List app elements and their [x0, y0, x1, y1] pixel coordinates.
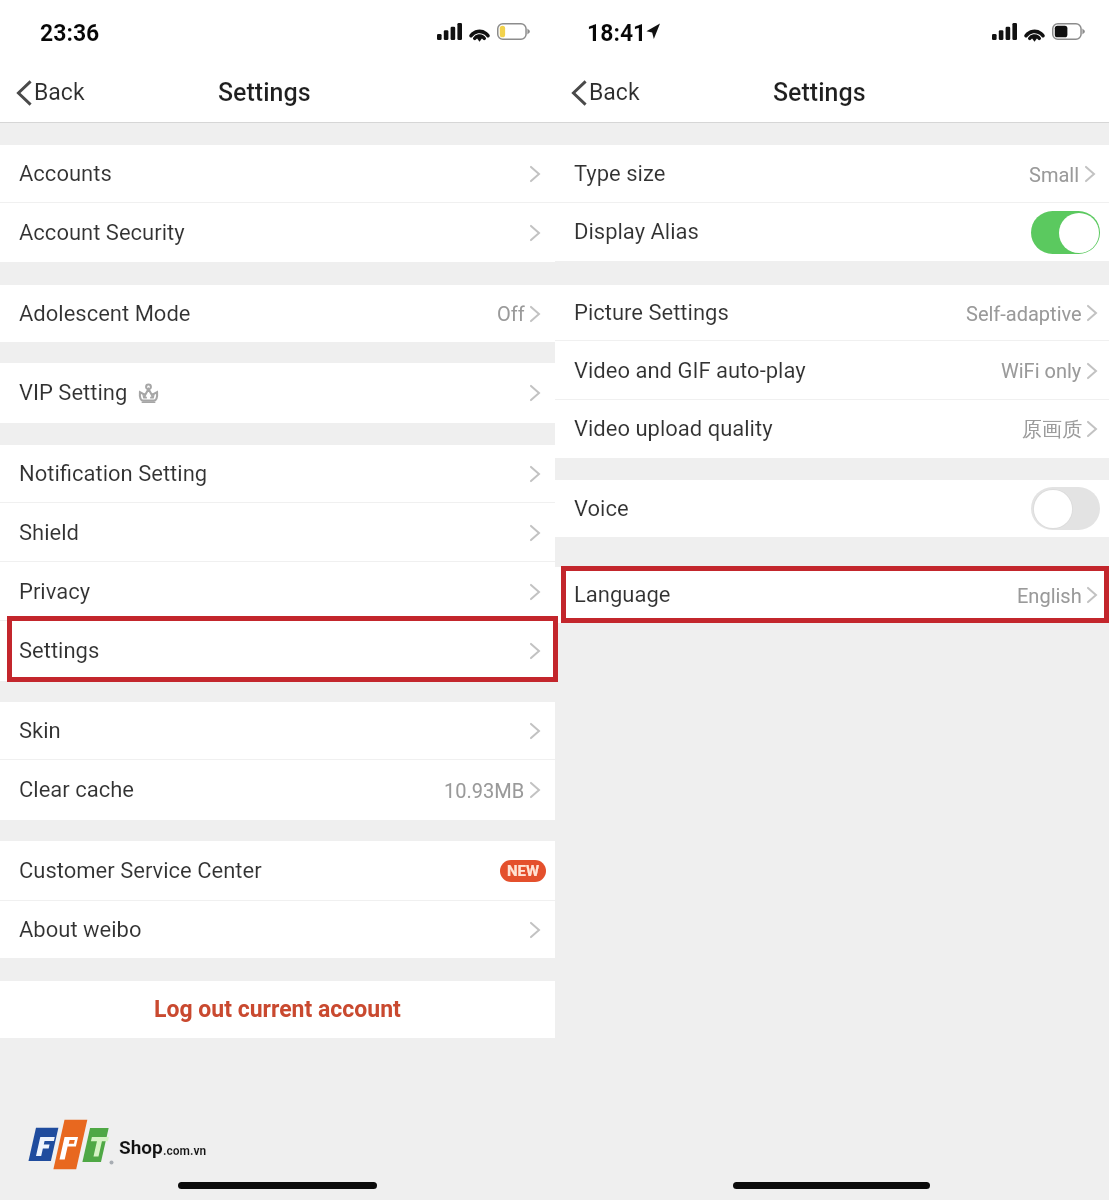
staticText: Log out current account: [154, 996, 401, 1023]
button[interactable]: Privacy: [0, 562, 555, 621]
button[interactable]: Switch on: [1031, 211, 1100, 254]
button[interactable]: Display Alias: [555, 203, 1109, 261]
staticText: Language: [574, 582, 671, 608]
button[interactable]: Video and GIF auto-play: [555, 341, 1109, 400]
button[interactable]: Video upload quality: [555, 400, 1109, 458]
button[interactable]: Type size: [555, 145, 1109, 203]
button[interactable]: Log out current account: [0, 981, 555, 1038]
button[interactable]: VIP Setting: [0, 363, 555, 423]
staticText: Voice: [574, 496, 629, 522]
staticText: Back: [589, 79, 640, 106]
staticText: Video and GIF auto-play: [574, 358, 806, 384]
staticText: Off: [497, 302, 525, 325]
staticText: Notification Setting: [19, 461, 208, 487]
button[interactable]: Customer Service Center: [0, 841, 555, 901]
button[interactable]: Skin: [0, 702, 555, 760]
staticText: Adolescent Mode: [19, 301, 191, 327]
staticText: Accounts: [19, 161, 112, 187]
staticText: Clear cache: [19, 777, 134, 803]
staticText: Type size: [574, 161, 666, 187]
staticText: Back: [34, 79, 85, 106]
staticText: 原画质: [1022, 417, 1082, 442]
button[interactable]: About weibo: [0, 901, 555, 958]
staticText: Shield: [19, 520, 79, 546]
staticText: Skin: [19, 718, 61, 744]
button[interactable]: Language: [555, 567, 1109, 623]
staticText: Picture Settings: [574, 300, 729, 326]
button[interactable]: Picture Settings: [555, 285, 1109, 341]
staticText: Customer Service Center: [19, 858, 262, 884]
staticText: 23:36: [40, 20, 100, 47]
button[interactable]: Voice: [555, 480, 1109, 537]
staticText: Video upload quality: [574, 416, 773, 442]
staticText: WiFi only: [1001, 359, 1082, 382]
button[interactable]: Clear cache: [0, 760, 555, 820]
staticText: Self-adaptive: [966, 302, 1082, 325]
staticText: NEW: [507, 862, 540, 880]
button[interactable]: Accounts: [0, 145, 555, 203]
staticText: VIP Setting: [19, 380, 128, 406]
staticText: Small: [1029, 163, 1080, 186]
staticText: .com.vn: [163, 1144, 207, 1158]
staticText: Settings: [218, 78, 311, 107]
staticText: Settings: [773, 78, 866, 107]
staticText: Display Alias: [574, 219, 699, 245]
staticText: Privacy: [19, 579, 91, 605]
staticText: About weibo: [19, 917, 142, 943]
button[interactable]: Back: [555, 62, 652, 123]
button[interactable]: Settings: [0, 621, 555, 681]
staticText: Shop: [119, 1136, 163, 1158]
staticText: 18:41: [587, 20, 647, 47]
staticText: 10.93MB: [444, 779, 525, 802]
staticText: English: [1017, 584, 1082, 607]
button[interactable]: Account Security: [0, 203, 555, 262]
button[interactable]: Shield: [0, 503, 555, 562]
button[interactable]: Notification Setting: [0, 445, 555, 503]
button[interactable]: Adolescent Mode: [0, 285, 555, 342]
staticText: Settings: [19, 638, 100, 664]
button[interactable]: Back: [0, 62, 97, 123]
button[interactable]: Switch off: [1031, 487, 1100, 530]
staticText: Account Security: [19, 220, 185, 246]
